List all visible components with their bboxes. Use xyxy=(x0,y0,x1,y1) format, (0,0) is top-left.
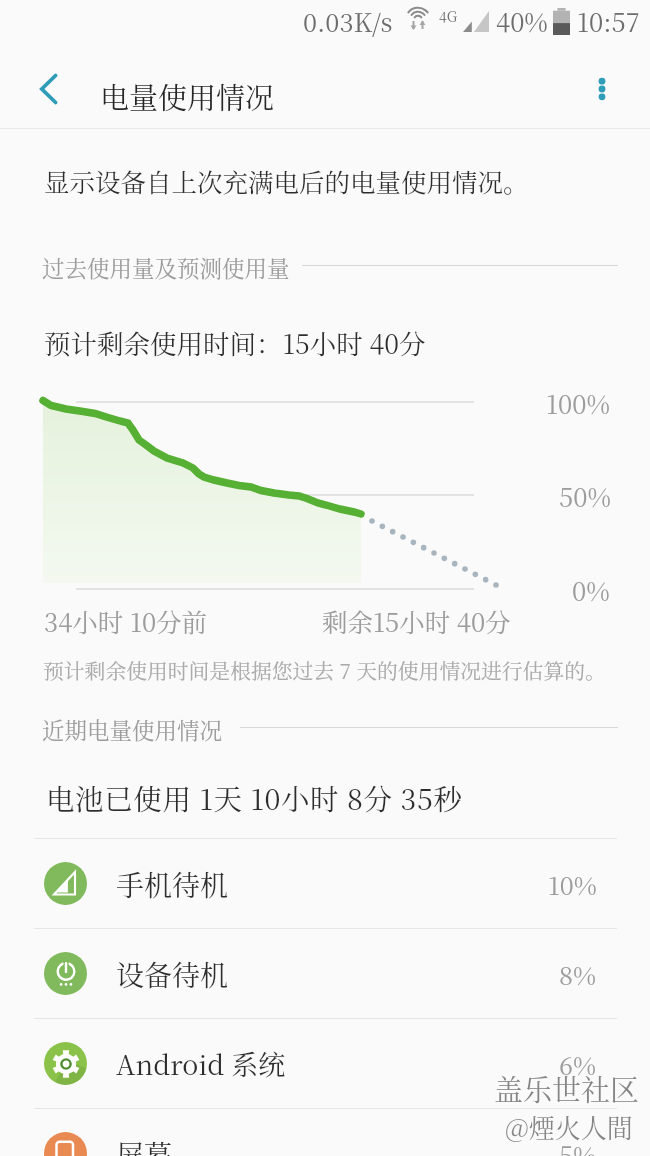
staticText: 近期电量使用情况 xyxy=(42,713,223,745)
button[interactable]: 屏幕 xyxy=(0,1109,650,1156)
staticText: 屏幕 xyxy=(116,1134,173,1156)
staticText: 34小时 10分前 xyxy=(44,603,208,640)
staticText: 40% xyxy=(496,3,548,40)
staticText: 手机待机 xyxy=(116,864,229,904)
staticText: 显示设备自上次充满电后的电量使用情况。 xyxy=(44,163,529,200)
staticText: 盖乐世社区 xyxy=(494,1068,640,1110)
staticText: 设备待机 xyxy=(116,954,229,994)
staticText: 100% xyxy=(546,385,610,422)
staticText: 10:57 xyxy=(577,3,640,40)
staticText: 过去使用量及预测使用量 xyxy=(42,251,290,283)
button[interactable]: 设备待机 xyxy=(0,929,650,1018)
staticText: Android 系统 xyxy=(116,1044,286,1083)
staticText: 0.03K/s xyxy=(303,3,393,40)
staticText: @煙火人間 xyxy=(505,1108,633,1145)
staticText: 0% xyxy=(572,572,610,609)
staticText: 10% xyxy=(548,866,597,902)
button[interactable]: More options xyxy=(567,54,637,124)
button[interactable]: Android 系统 xyxy=(0,1019,650,1108)
button[interactable]: Back xyxy=(10,50,88,128)
staticText: 预计剩余使用时间是根据您过去 7 天的使用情况进行估算的。 xyxy=(43,655,606,685)
staticText: 电量使用情况 xyxy=(100,76,275,118)
staticText: 6% xyxy=(559,1046,597,1082)
staticText: 8% xyxy=(559,956,597,992)
staticText: 电池已使用 1天 10小时 8分 35秒 xyxy=(46,777,463,818)
staticText: 5% xyxy=(559,1136,597,1156)
button[interactable]: 手机待机 xyxy=(0,839,650,928)
staticText: 剩余15小时 40分 xyxy=(322,603,511,640)
staticText: 50% xyxy=(559,478,611,515)
staticText: 预计剩余使用时间：15小时 40分 xyxy=(44,323,426,361)
staticText: 4G xyxy=(439,6,458,26)
